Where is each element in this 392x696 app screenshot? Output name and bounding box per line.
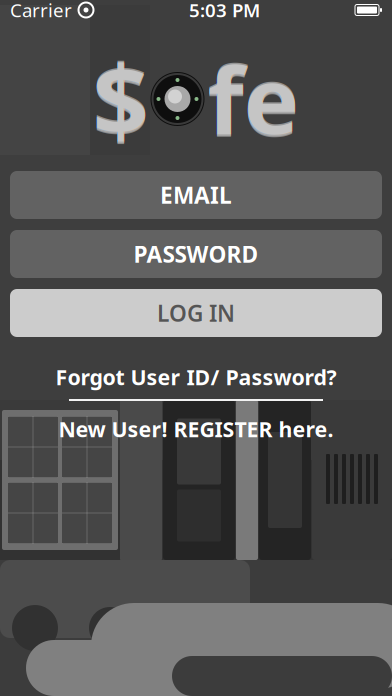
- staticText: EMAIL: [160, 180, 232, 210]
- staticText: Carrier: [10, 0, 72, 22]
- staticText: $: [92, 32, 148, 163]
- button[interactable]: LOG IN: [10, 289, 382, 337]
- staticText: $: [92, 34, 148, 165]
- button[interactable]: PASSWORD: [10, 230, 382, 278]
- button[interactable]: Forgot User ID/ Password?: [10, 366, 382, 388]
- staticText: fe: [207, 37, 299, 161]
- staticText: PASSWORD: [133, 239, 258, 269]
- staticText: fe: [207, 35, 299, 159]
- staticText: LOG IN: [157, 298, 235, 328]
- staticText: $: [92, 33, 148, 164]
- staticText: Forgot User ID/ Password?: [55, 363, 336, 391]
- button[interactable]: New User! REGISTER here.: [10, 412, 382, 440]
- staticText: New User! REGISTER here.: [58, 415, 333, 443]
- staticText: 5:03 PM: [189, 0, 260, 22]
- button[interactable]: EMAIL: [10, 171, 382, 219]
- staticText: fe: [207, 38, 299, 162]
